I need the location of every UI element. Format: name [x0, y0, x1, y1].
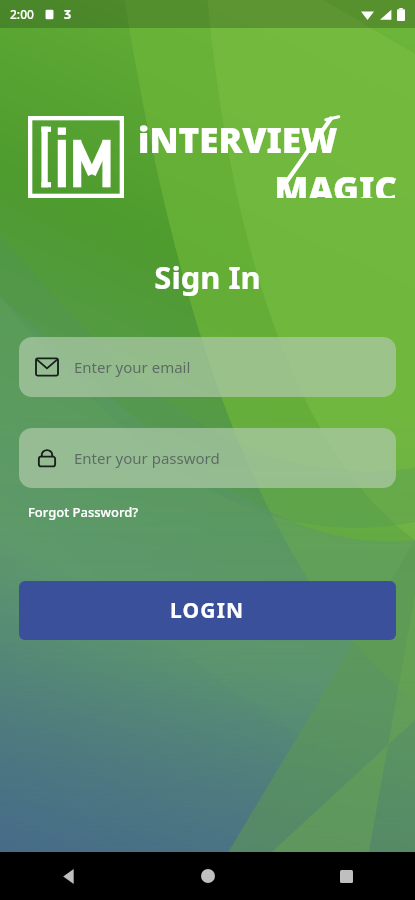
other: Interview Magic logo: [28, 116, 124, 198]
staticText: LOGIN: [170, 596, 245, 625]
staticText: Ʒ: [64, 6, 72, 22]
button[interactable]: Back: [45, 852, 93, 900]
button[interactable]: Forgot Password?: [26, 501, 141, 523]
button[interactable]: Enter your password: [19, 428, 396, 488]
staticText: Forgot Password?: [28, 503, 139, 521]
staticText: Sign In: [0, 256, 415, 298]
staticText: MAGIC: [138, 165, 397, 198]
staticText: Enter your password: [74, 448, 220, 468]
button[interactable]: Recent apps: [322, 852, 370, 900]
staticText: 2:00: [10, 6, 34, 22]
staticText: iNTERVIEW: [138, 116, 397, 164]
button[interactable]: Enter your email: [19, 337, 396, 397]
staticText: Enter your email: [74, 357, 191, 377]
button[interactable]: LOGIN: [19, 581, 396, 640]
button[interactable]: Home: [184, 852, 232, 900]
